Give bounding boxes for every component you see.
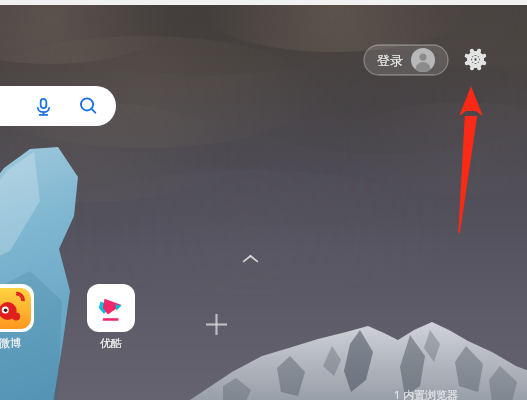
button[interactable]: 优酷 [75, 284, 147, 350]
button[interactable]: Expand app drawer [238, 246, 262, 270]
button[interactable]: Settings [459, 43, 491, 75]
button[interactable]: Search [0, 86, 116, 126]
button[interactable]: Add shortcut [200, 308, 232, 340]
button[interactable]: 登录 [364, 45, 448, 75]
staticText: 优酷 [100, 336, 122, 350]
staticText: 微博 [0, 336, 21, 350]
staticText: 登录 [377, 52, 403, 68]
staticText: 1 内置浏览器 [394, 387, 459, 400]
button[interactable]: 微博 [0, 284, 46, 350]
